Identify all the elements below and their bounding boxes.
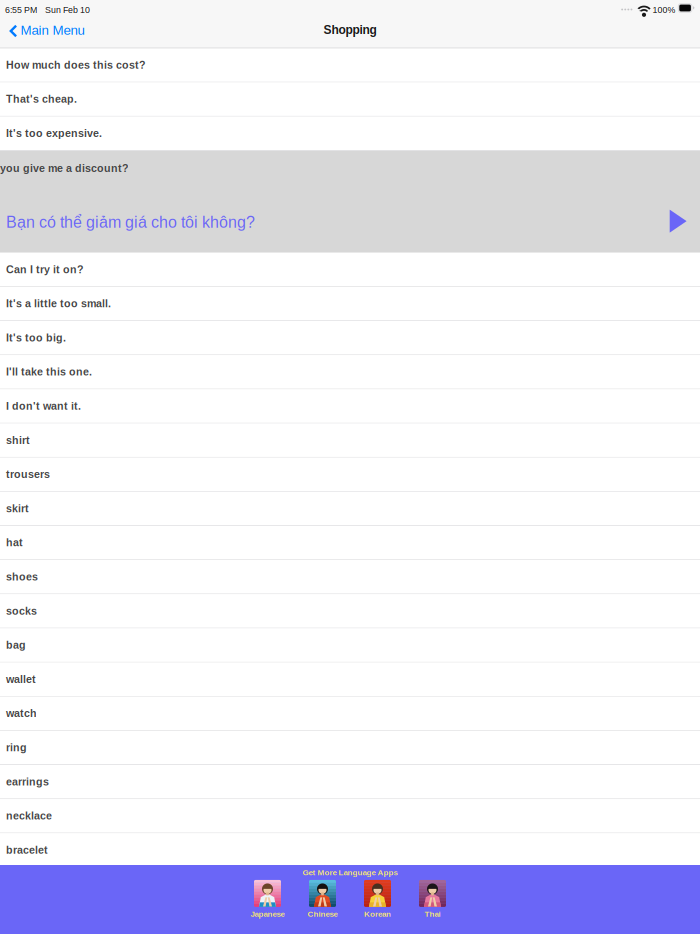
button[interactable]: earrings	[0, 765, 700, 799]
button[interactable]: Chinese	[295, 880, 350, 918]
button[interactable]: necklace	[0, 799, 700, 833]
staticText: Japanese	[250, 909, 284, 918]
staticText: It's too expensive.	[6, 127, 102, 139]
staticText: Korean	[364, 909, 391, 918]
staticText: Bạn có thể giảm giá cho tôi không?	[6, 213, 255, 231]
staticText: Can I try it on?	[6, 263, 84, 275]
button[interactable]: hat	[0, 526, 700, 560]
button[interactable]: Can you give me a discount?	[0, 151, 640, 253]
staticText: 100%	[652, 5, 675, 15]
staticText: watch	[6, 707, 37, 719]
button[interactable]: shirt	[0, 423, 700, 458]
staticText: Get More Language Apps	[302, 868, 397, 877]
staticText: I don't want it.	[6, 400, 81, 412]
button[interactable]: I don't want it.	[0, 389, 700, 423]
button[interactable]: wallet	[0, 662, 700, 697]
staticText: wallet	[6, 673, 36, 685]
button[interactable]: bag	[0, 628, 700, 663]
staticText: bag	[6, 639, 26, 651]
staticText: necklace	[6, 810, 52, 822]
button[interactable]: It's too big.	[0, 321, 700, 355]
button[interactable]: shoes	[0, 560, 700, 594]
button[interactable]: Thai	[405, 880, 460, 918]
staticText: hat	[6, 537, 23, 549]
button[interactable]: socks	[0, 594, 700, 628]
staticText: Main Menu	[20, 23, 84, 38]
staticText: I'll take this one.	[6, 366, 92, 378]
staticText: bracelet	[6, 844, 48, 856]
staticText: Sun Feb 10	[45, 5, 90, 15]
button[interactable]: Main Menu	[0, 18, 92, 44]
staticText: Thai	[424, 909, 440, 918]
staticText: Can you give me a discount?	[0, 162, 129, 174]
staticText: It's too big.	[6, 332, 66, 344]
button[interactable]: Play pronunciation	[659, 201, 697, 243]
staticText: ring	[6, 742, 27, 753]
button[interactable]: Can I try it on?	[0, 253, 700, 287]
staticText: Chinese	[307, 909, 337, 918]
staticText: That's cheap.	[6, 93, 77, 105]
button[interactable]: It's too expensive.	[0, 117, 700, 151]
button[interactable]: bracelet	[0, 833, 700, 867]
staticText: It's a little too small.	[6, 298, 111, 310]
staticText: trousers	[6, 468, 50, 480]
button[interactable]: trousers	[0, 458, 700, 492]
button[interactable]: I'll take this one.	[0, 355, 700, 389]
staticText: Shopping	[323, 23, 376, 36]
staticText: How much does this cost?	[6, 59, 146, 71]
button[interactable]: skirt	[0, 492, 700, 526]
staticText: skirt	[6, 503, 29, 514]
button[interactable]: Korean	[350, 880, 405, 918]
button[interactable]: ring	[0, 731, 700, 765]
button[interactable]: It's a little too small.	[0, 287, 700, 321]
staticText: 6:55 PM	[5, 5, 37, 15]
staticText: shoes	[6, 571, 38, 583]
button[interactable]: That's cheap.	[0, 82, 700, 117]
staticText: shirt	[6, 434, 30, 446]
button[interactable]: Japanese	[240, 880, 295, 918]
staticText: earrings	[6, 776, 49, 788]
staticText: socks	[6, 605, 37, 617]
button[interactable]: watch	[0, 697, 700, 731]
button[interactable]: How much does this cost?	[0, 48, 700, 82]
